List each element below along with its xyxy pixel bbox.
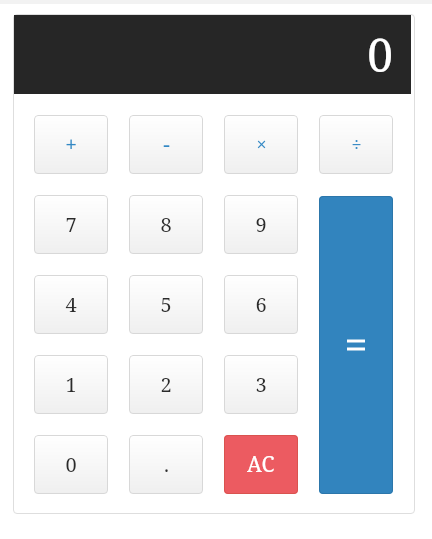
button[interactable]: AC xyxy=(224,435,298,494)
staticText: 0 xyxy=(65,451,77,478)
button[interactable]: 3 xyxy=(224,355,298,414)
button[interactable]: ÷ xyxy=(319,115,393,174)
button[interactable]: + xyxy=(34,115,108,174)
staticText: × xyxy=(256,132,267,157)
button[interactable]: 4 xyxy=(34,275,108,334)
staticText: 2 xyxy=(160,371,172,398)
button[interactable]: 1 xyxy=(34,355,108,414)
staticText: 0 xyxy=(367,23,393,86)
staticText: 5 xyxy=(160,291,172,318)
staticText: ÷ xyxy=(351,132,362,157)
staticText: 8 xyxy=(160,211,172,238)
button[interactable]: 5 xyxy=(129,275,203,334)
staticText: 4 xyxy=(65,291,77,318)
button[interactable]: 0 xyxy=(34,435,108,494)
button[interactable]: 6 xyxy=(224,275,298,334)
button[interactable]: 7 xyxy=(34,195,108,254)
staticText: 1 xyxy=(65,371,77,398)
button[interactable]: × xyxy=(224,115,298,174)
staticText: 7 xyxy=(65,211,77,238)
button[interactable]: Equals xyxy=(319,196,393,494)
staticText: 3 xyxy=(255,371,267,398)
staticText: AC xyxy=(247,450,275,479)
button[interactable]: 8 xyxy=(129,195,203,254)
button[interactable]: - xyxy=(129,115,203,174)
staticText: 6 xyxy=(255,291,267,318)
button[interactable]: . xyxy=(129,435,203,494)
staticText: + xyxy=(65,130,77,159)
button[interactable]: 2 xyxy=(129,355,203,414)
staticText: 9 xyxy=(255,211,267,238)
button[interactable]: 9 xyxy=(224,195,298,254)
staticText: . xyxy=(164,451,169,478)
staticText: - xyxy=(163,130,170,159)
